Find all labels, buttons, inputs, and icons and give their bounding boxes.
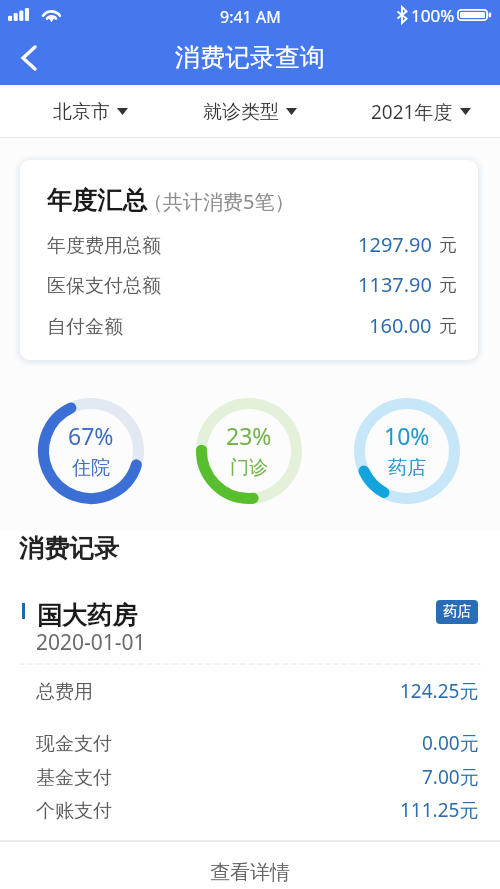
staticText: 国大药房: [37, 600, 137, 631]
staticText: 67%: [68, 420, 114, 451]
staticText: 查看详情: [210, 860, 290, 885]
staticText: 年度费用总额: [47, 234, 161, 258]
button[interactable]: Back: [0, 30, 58, 85]
staticText: 9:41 AM: [220, 6, 281, 28]
staticText: 160.00: [369, 312, 432, 339]
staticText: 北京市: [53, 100, 110, 124]
staticText: 元: [439, 315, 457, 338]
staticText: 2020-01-01: [36, 628, 146, 657]
button[interactable]: 基金支付: [36, 764, 479, 790]
staticText: 就诊类型: [203, 100, 279, 124]
staticText: （共计消费5笔）: [143, 188, 295, 215]
button[interactable]: 总费用: [36, 678, 479, 704]
button[interactable]: 现金支付: [36, 730, 479, 756]
staticText: 年度汇总: [47, 185, 147, 216]
staticText: 2021年度: [371, 99, 453, 125]
button[interactable]: 药店: [436, 600, 478, 624]
staticText: 个账支付: [36, 799, 112, 823]
button[interactable]: 药店: [354, 398, 460, 504]
staticText: 0.00元: [422, 730, 479, 756]
staticText: 总费用: [36, 680, 93, 704]
staticText: 住院: [72, 456, 110, 480]
button[interactable]: 北京市: [36, 85, 144, 138]
button[interactable]: 2021年度: [358, 85, 484, 138]
staticText: 元: [439, 234, 457, 257]
staticText: 1297.90: [358, 231, 432, 258]
staticText: 1137.90: [358, 271, 432, 298]
staticText: 124.25元: [400, 678, 479, 704]
staticText: 消费记录查询: [175, 42, 325, 73]
button[interactable]: 住院: [38, 398, 144, 504]
staticText: 消费记录: [19, 533, 119, 564]
staticText: 药店: [388, 456, 426, 480]
staticText: 药店: [443, 603, 471, 621]
button[interactable]: 查看详情: [0, 850, 500, 889]
staticText: 自付金额: [47, 315, 123, 339]
staticText: 7.00元: [422, 764, 479, 790]
staticText: 基金支付: [36, 766, 112, 790]
staticText: 元: [439, 274, 457, 297]
staticText: 现金支付: [36, 732, 112, 756]
staticText: 10%: [384, 420, 430, 451]
button[interactable]: 门诊: [196, 398, 302, 504]
button[interactable]: 就诊类型: [190, 85, 310, 138]
staticText: 100%: [411, 4, 455, 27]
staticText: 23%: [226, 420, 272, 451]
staticText: 门诊: [230, 456, 268, 480]
button[interactable]: 个账支付: [36, 797, 479, 823]
staticText: 医保支付总额: [47, 274, 161, 298]
staticText: 111.25元: [400, 797, 479, 823]
